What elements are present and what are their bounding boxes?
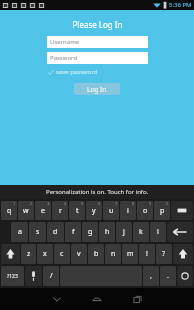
button[interactable]: d: [47, 222, 64, 242]
button[interactable]: Backspace: [171, 201, 193, 220]
button[interactable]: !: [139, 244, 155, 264]
button[interactable]: 3: [35, 201, 51, 220]
staticText: !: [146, 249, 148, 259]
button[interactable]: x: [37, 244, 53, 264]
staticText: 6: [98, 201, 101, 206]
staticText: 4: [64, 201, 67, 206]
staticText: q: [7, 206, 12, 216]
button[interactable]: 4: [52, 201, 68, 220]
button[interactable]: ,: [143, 266, 159, 286]
staticText: 0: [166, 201, 169, 206]
staticText: b: [94, 249, 99, 259]
staticText: t: [76, 206, 79, 216]
staticText: y: [92, 206, 96, 216]
staticText: i: [127, 206, 129, 216]
staticText: ,: [150, 271, 152, 281]
button[interactable]: Enter: [167, 222, 193, 242]
staticText: v: [77, 249, 81, 259]
staticText: Personalization is on. Touch for info.: [46, 188, 149, 196]
staticText: 9: [149, 201, 152, 206]
staticText: f: [72, 227, 75, 237]
button[interactable]: n: [105, 244, 121, 264]
button[interactable]: .: [160, 266, 176, 286]
staticText: z: [27, 249, 31, 259]
button[interactable]: f: [65, 222, 81, 242]
staticText: 3: [47, 201, 50, 206]
staticText: save password: [56, 68, 98, 76]
button[interactable]: 5: [69, 201, 85, 220]
staticText: e: [41, 206, 45, 216]
button[interactable]: Username: [47, 36, 148, 48]
staticText: Username: [50, 38, 80, 46]
button[interactable]: Personalization is on. Touch for info.: [0, 185, 194, 199]
button[interactable]: 0: [154, 201, 170, 220]
button[interactable]: 8: [120, 201, 136, 220]
staticText: 8: [132, 201, 135, 206]
staticText: Please Log In: [72, 19, 123, 30]
button[interactable]: 6: [86, 201, 102, 220]
button[interactable]: b: [88, 244, 104, 264]
button[interactable]: Password: [47, 52, 148, 64]
staticText: o: [143, 206, 148, 216]
staticText: x: [43, 249, 47, 259]
button[interactable]: Shift: [1, 244, 20, 264]
staticText: j: [123, 227, 125, 237]
staticText: 7: [115, 201, 118, 206]
button[interactable]: Recent apps: [117, 288, 157, 310]
button[interactable]: c: [54, 244, 70, 264]
button[interactable]: l: [150, 222, 166, 242]
staticText: n: [111, 249, 116, 259]
staticText: /: [50, 271, 53, 281]
staticText: g: [88, 227, 93, 237]
button[interactable]: Voice input: [25, 266, 42, 286]
button[interactable]: z: [21, 244, 36, 264]
button[interactable]: v: [71, 244, 87, 264]
staticText: 1: [13, 201, 16, 206]
staticText: s: [36, 227, 40, 237]
staticText: p: [160, 206, 165, 216]
staticText: 5:36 PM: [169, 1, 192, 9]
button[interactable]: k: [133, 222, 149, 242]
button[interactable]: 2: [18, 201, 34, 220]
staticText: l: [157, 227, 159, 237]
button[interactable]: save password: [47, 68, 147, 76]
button[interactable]: Emoji: [177, 266, 193, 286]
staticText: d: [53, 227, 58, 237]
button[interactable]: Log In: [74, 83, 120, 95]
button[interactable]: ?: [156, 244, 172, 264]
staticText: Password: [50, 54, 78, 62]
staticText: w: [23, 206, 29, 216]
button[interactable]: 1: [1, 201, 17, 220]
button[interactable]: j: [116, 222, 132, 242]
button[interactable]: a: [11, 222, 28, 242]
staticText: a: [18, 227, 22, 237]
staticText: c: [60, 249, 64, 259]
staticText: .: [167, 271, 169, 281]
button[interactable]: Back: [37, 288, 77, 310]
button[interactable]: Shift: [173, 244, 193, 264]
button[interactable]: Home: [77, 288, 117, 310]
button[interactable]: /: [43, 266, 59, 286]
staticText: m: [127, 249, 134, 259]
staticText: ?123: [7, 273, 18, 280]
staticText: ?: [162, 249, 166, 259]
button[interactable]: ?123: [1, 266, 24, 286]
button[interactable]: m: [122, 244, 138, 264]
staticText: Log In: [87, 85, 107, 94]
button[interactable]: g: [82, 222, 98, 242]
button[interactable]: 7: [103, 201, 119, 220]
button[interactable]: 9: [137, 201, 153, 220]
staticText: h: [105, 227, 110, 237]
button[interactable]: h: [99, 222, 115, 242]
staticText: r: [59, 206, 62, 216]
staticText: u: [109, 206, 114, 216]
staticText: 5: [81, 201, 84, 206]
staticText: k: [139, 227, 143, 237]
staticText: 2: [30, 201, 33, 206]
button[interactable]: s: [29, 222, 46, 242]
